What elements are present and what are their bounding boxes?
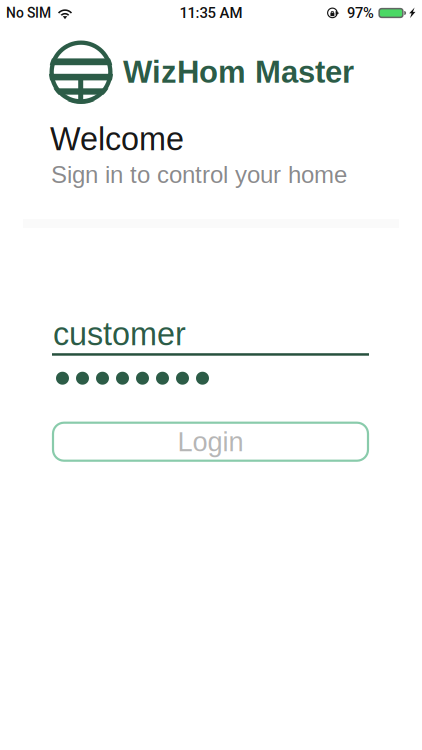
staticText: customer: [53, 316, 186, 352]
staticText: Sign in to control your home: [51, 161, 347, 188]
staticText: No SIM: [6, 5, 51, 21]
staticText: 11:35 AM: [179, 4, 242, 22]
staticText: 97%: [347, 4, 374, 22]
staticText: Welcome: [50, 121, 184, 157]
staticText: WizHom Master: [123, 55, 354, 89]
button[interactable]: Login: [53, 423, 368, 461]
staticText: Login: [177, 426, 243, 457]
